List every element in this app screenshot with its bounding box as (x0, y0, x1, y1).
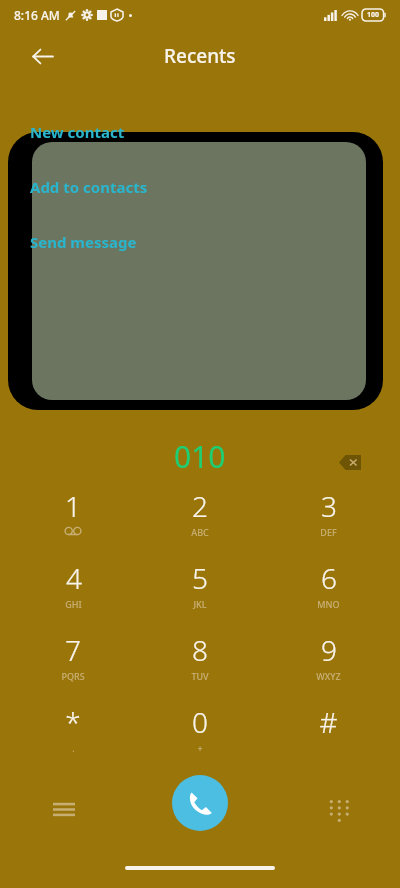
staticText: 6 (321, 559, 337, 597)
button[interactable]: 1 (18, 487, 128, 559)
staticText: # (319, 703, 338, 741)
staticText: Recents (164, 43, 236, 69)
staticText: 2 (192, 487, 208, 525)
staticText: WXYZ (316, 670, 341, 682)
staticText: 8:16 AM (14, 7, 60, 23)
button[interactable]: 9 (273, 631, 383, 703)
staticText: 3 (321, 487, 337, 525)
button[interactable]: 8 (145, 631, 255, 703)
button[interactable]: 6 (273, 559, 383, 631)
staticText: 1 (65, 487, 81, 525)
staticText: PQRS (61, 670, 85, 682)
staticText: 7 (65, 631, 81, 669)
staticText: JKL (193, 598, 207, 610)
staticText: Send message (30, 232, 137, 252)
staticText: 010 (174, 436, 226, 477)
button[interactable]: 4 (18, 559, 128, 631)
staticText: 9 (321, 631, 337, 669)
button[interactable]: Backspace (326, 438, 374, 486)
staticText: . (72, 742, 75, 754)
button[interactable]: 3 (273, 487, 383, 559)
staticText: 0 (192, 703, 208, 741)
staticText: MNO (317, 598, 340, 610)
staticText: TUV (191, 670, 209, 682)
button[interactable]: Call log (40, 785, 88, 833)
button[interactable]: 5 (145, 559, 255, 631)
button[interactable]: Add to contacts (30, 173, 148, 201)
staticText: * (65, 703, 81, 741)
button[interactable]: 7 (18, 631, 128, 703)
button[interactable]: * (18, 703, 128, 775)
button[interactable]: Back (22, 36, 62, 76)
button[interactable]: New contact (30, 118, 125, 146)
staticText: New contact (30, 122, 125, 142)
button[interactable]: Call (172, 775, 228, 831)
staticText: + (197, 742, 203, 754)
staticText: 5 (192, 559, 208, 597)
staticText: 100 (367, 10, 380, 20)
button[interactable]: Send message (30, 228, 137, 256)
staticText: GHI (65, 598, 82, 610)
button[interactable]: 0 (145, 703, 255, 775)
button[interactable]: 2 (145, 487, 255, 559)
staticText: ABC (191, 526, 209, 538)
staticText: 8 (192, 631, 208, 669)
staticText: 4 (66, 559, 82, 597)
button[interactable]: Dialpad (314, 785, 362, 833)
button[interactable]: # (273, 703, 383, 775)
staticText: DEF (320, 526, 337, 538)
staticText: Add to contacts (30, 177, 148, 197)
